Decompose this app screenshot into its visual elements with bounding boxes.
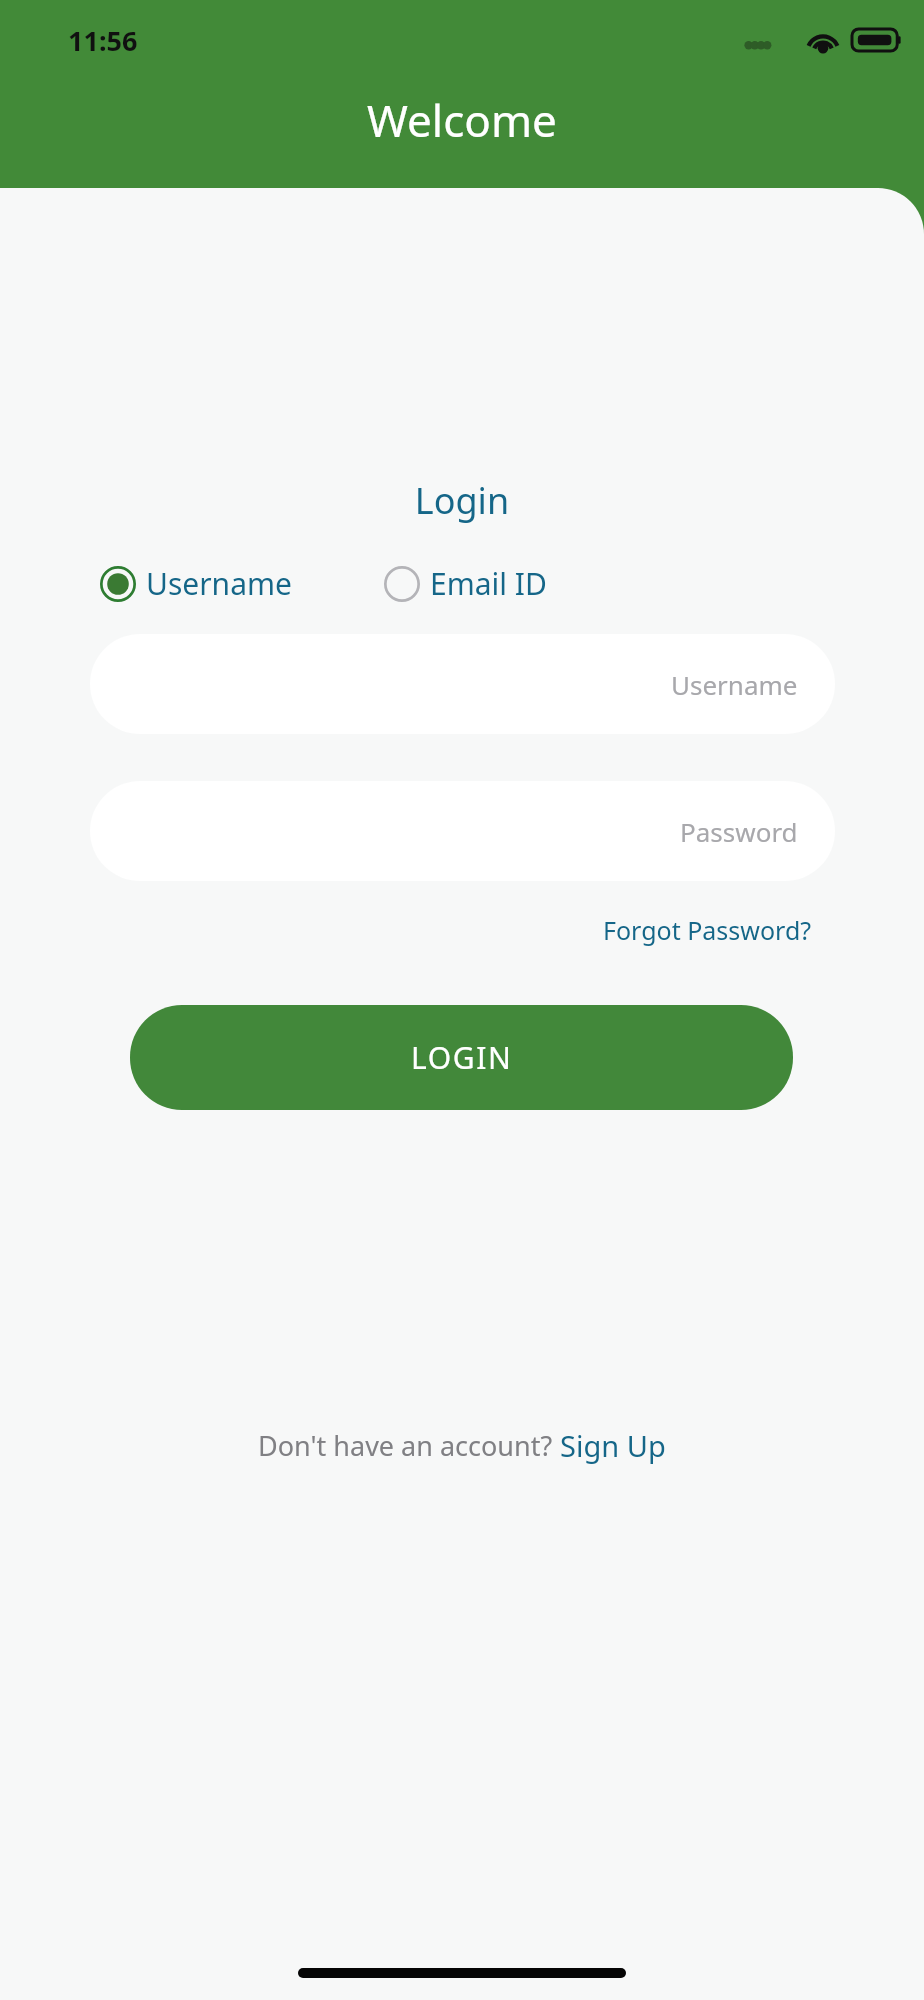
button[interactable]: Forgot Password? [597,907,818,953]
button[interactable]: Password [90,781,835,881]
staticText: Sign Up [560,1426,666,1465]
staticText: Password [680,814,798,849]
button[interactable]: Username [90,634,835,734]
button[interactable]: Username [98,559,294,608]
staticText: 11:56 [68,22,138,59]
staticText: Login [0,476,924,525]
button[interactable]: Sign Up [560,1426,666,1465]
staticText: Forgot Password? [603,913,812,947]
staticText: Username [671,667,798,702]
button[interactable]: LOGIN [130,1005,793,1110]
staticText: LOGIN [411,1037,513,1078]
staticText: Don't have an account? [258,1427,560,1464]
button[interactable]: Email ID [382,559,549,608]
staticText: Username [146,563,292,604]
staticText: Welcome [367,90,557,150]
staticText: Email ID [430,563,547,604]
